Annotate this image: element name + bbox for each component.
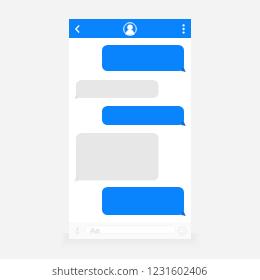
button[interactable]: Aa [85, 225, 176, 234]
button[interactable] [99, 106, 187, 128]
button[interactable] [73, 80, 162, 101]
button[interactable]: More options [178, 23, 190, 35]
button[interactable]: Emoji [176, 225, 188, 237]
staticText: shutterstock.com · 1231602406 [52, 264, 208, 278]
button[interactable] [99, 187, 187, 218]
staticText: Aa [90, 225, 100, 234]
button[interactable] [99, 45, 187, 74]
button[interactable]: Voice message [73, 226, 82, 235]
button[interactable]: Contact profile [122, 21, 138, 37]
button[interactable] [73, 133, 162, 184]
button[interactable]: Back [71, 23, 83, 35]
